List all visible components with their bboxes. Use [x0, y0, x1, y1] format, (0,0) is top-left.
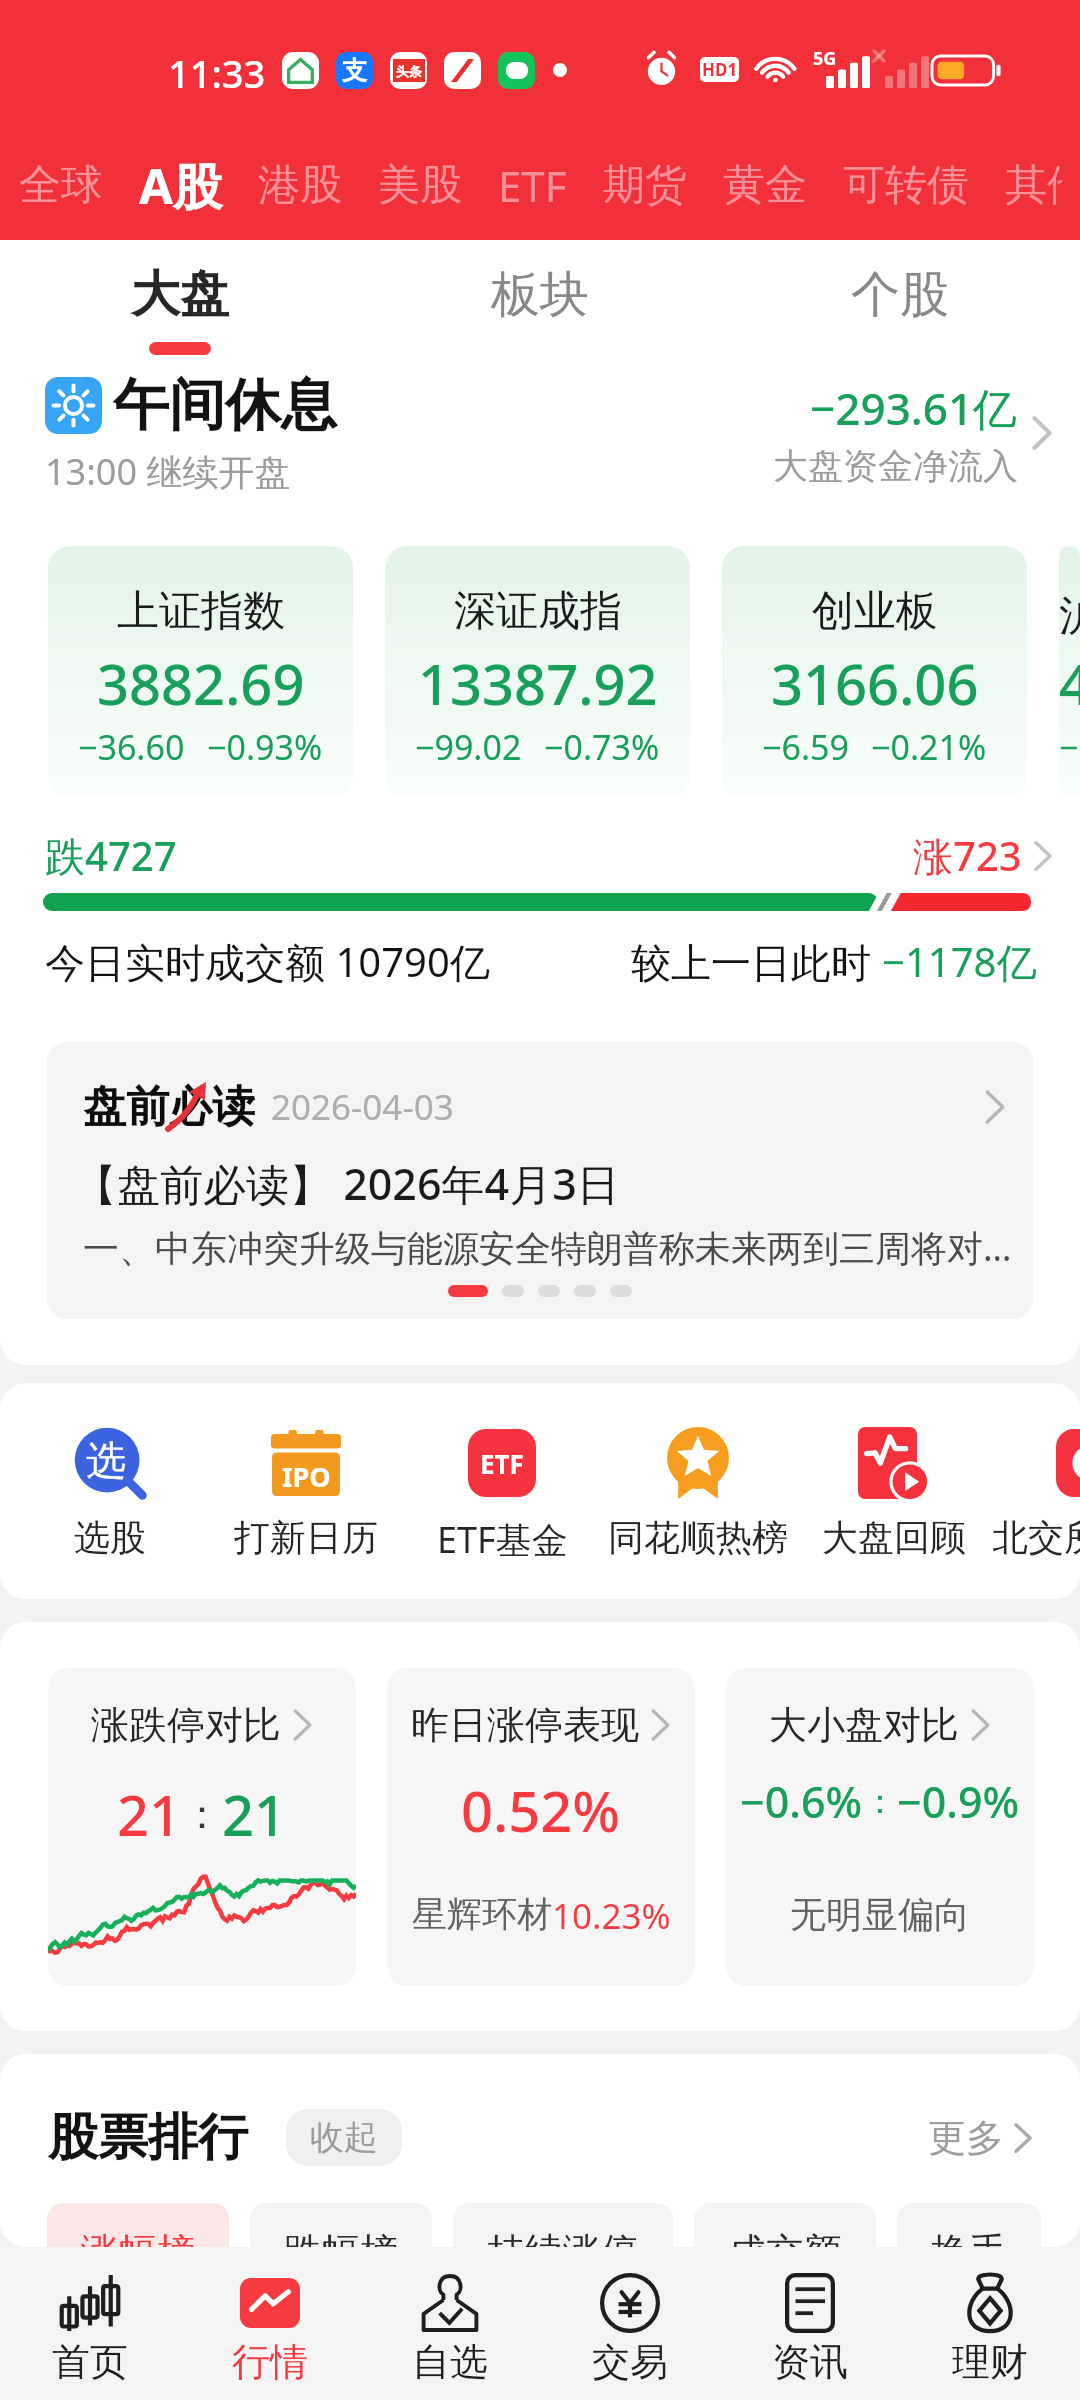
staticText: 选: [86, 1435, 126, 1485]
staticText: 无明显偏向: [790, 1892, 970, 1937]
staticText: ETF: [480, 1446, 524, 1481]
staticText: 昨日涨停表现: [411, 1701, 639, 1749]
button[interactable]: 持续涨停: [453, 2203, 673, 2247]
button[interactable]: 同花顺热榜: [600, 1427, 796, 1567]
button[interactable]: 沪深300: [1059, 546, 1080, 798]
button[interactable]: 板块: [360, 264, 720, 355]
staticText: 10.23%: [552, 1892, 671, 1940]
button[interactable]: 午间休息: [45, 370, 1054, 496]
button[interactable]: 首页: [0, 2247, 180, 2400]
button[interactable]: 个股: [720, 264, 1080, 355]
staticText: 自选: [412, 2338, 488, 2386]
staticText: 首页: [52, 2338, 128, 2386]
staticText: 涨723: [913, 828, 1022, 883]
staticText: A股: [139, 152, 222, 219]
staticText: −1178亿: [882, 934, 1037, 989]
staticText: −0.93%: [207, 724, 323, 770]
button[interactable]: 选: [12, 1427, 208, 1567]
staticText: HD1: [702, 58, 738, 81]
button[interactable]: 收起: [286, 2109, 402, 2166]
staticText: 涨跌停对比: [91, 1701, 281, 1749]
staticText: 支: [342, 55, 367, 86]
button[interactable]: 理财: [900, 2247, 1080, 2400]
button[interactable]: 美股: [360, 145, 480, 225]
staticText: 持续涨停: [487, 2228, 639, 2247]
staticText: 大盘资金净流入: [773, 444, 1018, 488]
button[interactable]: A股: [121, 145, 240, 225]
button[interactable]: 跌4727: [45, 828, 1054, 883]
other: 交易: [600, 2273, 660, 2333]
staticText: 13387.92: [418, 645, 658, 721]
staticText: 打新日历: [234, 1515, 378, 1560]
staticText: 北交所: [992, 1515, 1080, 1560]
staticText: 可转债: [843, 159, 969, 212]
staticText: 一、中东冲突升级与能源安全特朗普称未来两到三周将对…: [83, 1223, 1012, 1272]
button[interactable]: 换手: [897, 2203, 1041, 2247]
button[interactable]: 其他: [987, 145, 1080, 225]
button[interactable]: 自选: [360, 2247, 540, 2400]
button[interactable]: 跌幅榜: [250, 2203, 432, 2247]
button[interactable]: 交易: [540, 2247, 720, 2400]
staticText: 港股: [258, 159, 342, 212]
button[interactable]: 大盘: [0, 264, 360, 355]
staticText: 上证指数: [117, 585, 285, 638]
button[interactable]: ETF: [480, 145, 585, 225]
staticText: −293.61亿: [810, 378, 1018, 438]
staticText: −36.60: [78, 724, 185, 770]
button[interactable]: 资讯: [720, 2247, 900, 2400]
staticText: 大小盘对比: [769, 1701, 959, 1749]
staticText: 3882.69: [97, 645, 305, 721]
button[interactable]: IPO: [208, 1427, 404, 1567]
staticText: 股票排行: [48, 2106, 248, 2169]
staticText: −0.21%: [871, 724, 987, 770]
staticText: 成交额: [728, 2228, 842, 2247]
staticText: 收起: [310, 2116, 378, 2159]
staticText: 沪深300: [1059, 585, 1080, 642]
button[interactable]: 行情: [180, 2247, 360, 2400]
button[interactable]: 可转债: [825, 145, 987, 225]
button[interactable]: 北交所: [992, 1427, 1080, 1567]
staticText: 0.52%: [461, 1772, 621, 1848]
button[interactable]: 更多: [928, 2114, 1034, 2162]
staticText: 期货: [603, 159, 687, 212]
staticText: 全球: [19, 159, 103, 212]
staticText: 跌4727: [45, 828, 177, 883]
button[interactable]: 大小盘对比: [726, 1668, 1034, 1986]
other: 首页: [62, 2275, 118, 2331]
button[interactable]: 期货: [585, 145, 705, 225]
staticText: −6.59: [762, 724, 849, 770]
staticText: 午间休息: [113, 370, 337, 441]
staticText: IPO: [282, 1458, 331, 1495]
button[interactable]: 涨跌停对比: [48, 1668, 356, 1986]
button[interactable]: 成交额: [694, 2203, 876, 2247]
staticText: 21: [117, 1776, 182, 1852]
button[interactable]: 昨日涨停表现: [387, 1668, 695, 1986]
staticText: 5G: [813, 46, 837, 71]
staticText: ETF: [498, 157, 567, 214]
button[interactable]: 大盘回顾: [796, 1427, 992, 1567]
staticText: 深证成指: [454, 585, 622, 638]
button[interactable]: 盘前必读: [47, 1042, 1033, 1319]
staticText: 选股: [74, 1515, 146, 1560]
staticText: 大盘回顾: [822, 1515, 966, 1560]
staticText: 4500.00: [1059, 645, 1080, 721]
button[interactable]: 港股: [240, 145, 360, 225]
staticText: 创业板: [812, 585, 938, 638]
button[interactable]: 深证成指: [385, 546, 690, 798]
button[interactable]: ETF: [404, 1427, 600, 1567]
staticText: 11:33: [168, 47, 266, 99]
button[interactable]: 涨幅榜: [47, 2203, 229, 2247]
staticText: −10.0: [1059, 724, 1080, 770]
staticText: 其他: [1005, 159, 1062, 212]
staticText: 21: [222, 1776, 287, 1852]
staticText: 盘前必读: [83, 1080, 255, 1134]
button[interactable]: 黄金: [705, 145, 825, 225]
button[interactable]: 全球: [1, 145, 121, 225]
staticText: −0.9%: [897, 1772, 1020, 1831]
staticText: 更多: [928, 2114, 1004, 2162]
other: 行情: [240, 2278, 300, 2328]
button[interactable]: 上证指数: [48, 546, 353, 798]
staticText: 板块: [491, 264, 589, 326]
button[interactable]: 创业板: [722, 546, 1027, 798]
staticText: 大盘: [131, 264, 229, 326]
